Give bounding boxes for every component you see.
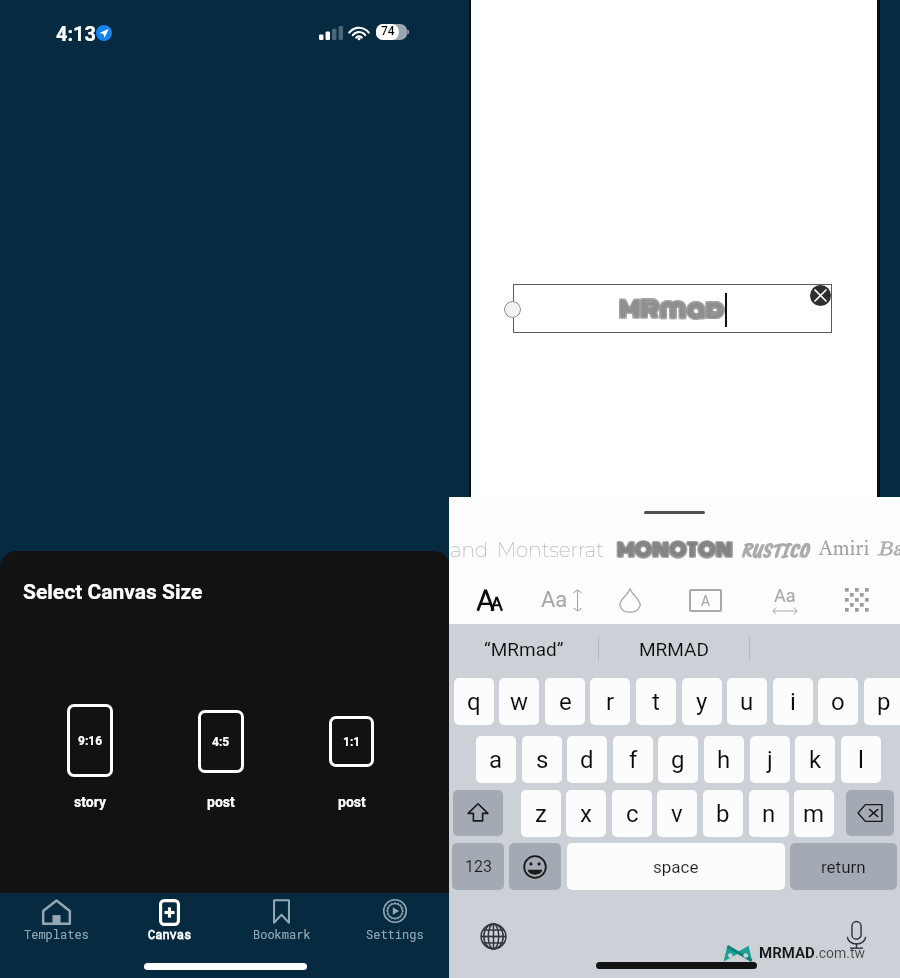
staticText: w (510, 688, 529, 716)
button[interactable]: Opacity (831, 576, 883, 624)
staticText: .com.tw (815, 945, 866, 961)
staticText: MONOTON (617, 536, 733, 566)
staticText: f (629, 746, 638, 774)
button[interactable]: m (794, 790, 834, 837)
button[interactable]: f (613, 736, 653, 783)
button[interactable]: 123 (452, 843, 504, 890)
button[interactable]: q (454, 678, 494, 725)
button[interactable]: g (658, 736, 698, 783)
button[interactable]: RUSTICO (741, 527, 809, 572)
button[interactable]: x (566, 790, 606, 837)
staticText: MONOTON (617, 534, 733, 564)
staticText: Montserrat (497, 538, 605, 562)
staticText: Amiri (819, 530, 870, 569)
button[interactable]: Templates (0, 893, 113, 978)
button[interactable]: Bookmark (225, 893, 338, 978)
button[interactable]: p (864, 678, 900, 725)
staticText: 4:13 (56, 22, 97, 45)
button[interactable]: 4:5 (198, 710, 244, 810)
button[interactable]: return (790, 843, 897, 890)
button[interactable]: 9:16 (67, 704, 113, 810)
staticText: s (536, 746, 549, 774)
staticText: MRMAD (639, 638, 709, 660)
staticText: y (696, 688, 708, 716)
button[interactable]: Change keyboard (480, 923, 507, 950)
button[interactable]: b (703, 790, 743, 837)
button[interactable]: h (704, 736, 744, 783)
staticText: 74 (381, 24, 395, 38)
button[interactable]: Dictation (847, 921, 866, 949)
staticText: t (652, 688, 660, 716)
staticText: story (74, 794, 106, 810)
staticText: 1:1 (343, 735, 361, 749)
button[interactable]: v (657, 790, 697, 837)
button[interactable]: r (590, 678, 630, 725)
button[interactable]: MONOTON (617, 527, 733, 572)
button[interactable]: Canvas (113, 893, 226, 978)
button[interactable]: n (749, 790, 789, 837)
button[interactable]: s (522, 736, 562, 783)
button[interactable]: w (499, 678, 539, 725)
staticText: MONOTON (617, 535, 733, 565)
button[interactable]: Shift (453, 790, 503, 836)
button[interactable]: d (567, 736, 607, 783)
button[interactable]: k (795, 736, 835, 783)
button[interactable]: Colour (604, 576, 656, 624)
button[interactable]: space (567, 843, 785, 890)
staticText: MRMAD (759, 944, 815, 962)
staticText: d (580, 746, 594, 774)
button[interactable]: y (682, 678, 722, 725)
button[interactable]: Bac (877, 527, 900, 572)
staticText: return (821, 857, 866, 877)
staticText: h (717, 746, 731, 774)
button[interactable]: t (636, 678, 676, 725)
staticText: RUSTICO (741, 537, 809, 563)
staticText: MONOTON (616, 534, 732, 564)
button[interactable]: z (521, 790, 561, 837)
button[interactable]: l (841, 736, 881, 783)
button[interactable]: and (450, 527, 489, 572)
button[interactable]: e (545, 678, 585, 725)
button[interactable]: i (773, 678, 813, 725)
button[interactable]: c (612, 790, 652, 837)
button[interactable]: j (750, 736, 790, 783)
staticText: m (803, 800, 825, 828)
staticText: r (606, 688, 615, 716)
button[interactable]: a (476, 736, 516, 783)
button[interactable]: Text size (536, 576, 588, 624)
button[interactable]: MRMAD (599, 624, 749, 674)
staticText: j (767, 746, 773, 774)
button[interactable]: Amiri (819, 527, 870, 572)
staticText: MRmad (618, 291, 724, 327)
staticText: MRmad (620, 291, 726, 327)
button[interactable]: u (727, 678, 767, 725)
button[interactable]: Montserrat (497, 527, 605, 572)
button[interactable]: MRmad (513, 284, 832, 333)
staticText: 9:16 (78, 734, 103, 748)
button[interactable]: “MRmad” (449, 624, 598, 674)
staticText: 123 (465, 857, 492, 876)
button[interactable]: Font (464, 576, 516, 624)
staticText: Settings (366, 926, 424, 942)
button[interactable]: Backspace (846, 790, 894, 836)
staticText: space (653, 857, 699, 877)
button[interactable]: Emoji (509, 843, 561, 890)
button[interactable]: Settings (338, 893, 451, 978)
staticText: MRmad (619, 291, 725, 327)
button[interactable]: o (818, 678, 858, 725)
staticText: MONOTON (618, 536, 734, 566)
staticText: post (207, 794, 235, 810)
staticText: A (701, 593, 711, 609)
staticText: n (762, 800, 776, 828)
staticText: “MRmad” (484, 638, 564, 660)
button[interactable]: Text background (679, 576, 731, 624)
button[interactable]: Delete text (810, 285, 831, 306)
staticText: e (559, 688, 572, 716)
staticText: u (740, 688, 754, 716)
button[interactable]: 1:1 (329, 716, 374, 810)
staticText: b (716, 800, 730, 828)
button[interactable]: Letter spacing (759, 576, 811, 624)
staticText: MONOTON (616, 536, 732, 566)
staticText: Canvas (148, 926, 192, 942)
staticText: MRmad (618, 290, 724, 326)
